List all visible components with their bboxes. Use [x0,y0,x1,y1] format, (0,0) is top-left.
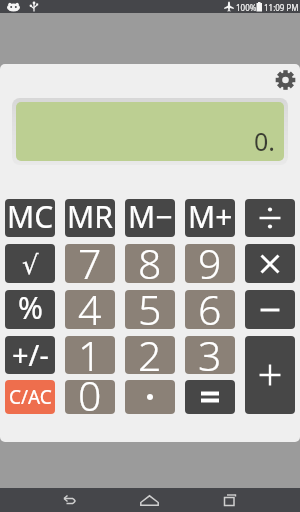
button[interactable] [125,380,175,414]
button[interactable]: +/- [5,336,55,374]
button[interactable] [245,290,295,329]
button[interactable]: M+ [185,199,235,237]
staticText: M− [128,199,173,234]
staticText: +/- [12,336,49,373]
button[interactable]: 3 [185,336,235,374]
staticText: M+ [188,199,233,234]
button[interactable]: % [5,290,55,329]
staticText: 1 [78,336,102,365]
button[interactable]: 5 [125,290,175,329]
button[interactable] [185,380,235,414]
staticText: 9 [198,244,222,274]
button[interactable] [245,199,295,237]
button[interactable]: √ [5,244,55,283]
button[interactable]: 9 [185,244,235,283]
staticText: 100% [236,2,257,13]
button[interactable] [209,488,249,512]
staticText: 6 [198,290,222,320]
staticText: 2 [138,336,162,365]
staticText: % [18,290,43,326]
staticText: 3 [198,336,222,365]
button[interactable]: 7 [65,244,115,283]
button[interactable] [274,68,298,92]
button[interactable] [245,244,295,283]
button[interactable]: M− [125,199,175,237]
button[interactable]: C/AC [5,380,55,414]
staticText: C/AC [9,384,52,410]
button[interactable] [245,336,295,414]
staticText: MR [67,199,113,234]
button[interactable]: 1 [65,336,115,374]
staticText: 0. [254,124,276,158]
button[interactable]: 2 [125,336,175,374]
staticText: 8 [138,244,162,274]
staticText: 5 [138,290,162,320]
staticText: 0 [78,380,102,401]
button[interactable] [48,488,88,512]
staticText: 4 [78,290,102,320]
button[interactable]: MR [65,199,115,237]
button[interactable]: 8 [125,244,175,283]
button[interactable]: 0 [65,380,115,414]
button[interactable]: 4 [65,290,115,329]
staticText: MC [7,199,54,234]
button[interactable] [129,488,169,512]
staticText: 7 [78,244,102,274]
staticText: √ [22,250,39,280]
button[interactable]: 6 [185,290,235,329]
staticText: 11:09 PM [264,2,299,13]
button[interactable]: MC [5,199,55,237]
